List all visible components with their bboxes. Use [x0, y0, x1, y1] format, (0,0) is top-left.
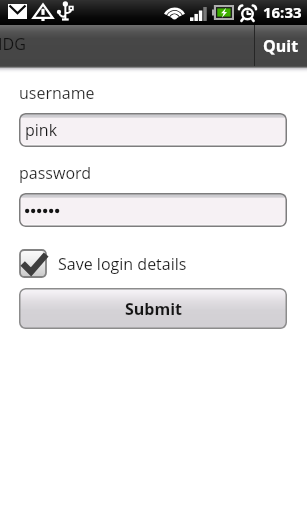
button[interactable]	[19, 193, 287, 227]
staticText: Submit	[125, 298, 182, 320]
staticText: IDG	[0, 33, 26, 55]
button[interactable]: pink	[19, 113, 287, 147]
staticText: 16:33	[263, 2, 302, 22]
staticText: Save login details	[58, 253, 187, 275]
button[interactable]: Quit	[255, 25, 307, 66]
staticText: Quit	[263, 35, 299, 57]
staticText: password	[19, 162, 92, 184]
staticText: username	[19, 82, 95, 104]
button[interactable]: Submit	[19, 288, 287, 329]
other: Save login details checkbox	[19, 249, 47, 278]
staticText: pink	[25, 119, 58, 141]
button[interactable]: Save login details checkbox	[19, 249, 187, 278]
